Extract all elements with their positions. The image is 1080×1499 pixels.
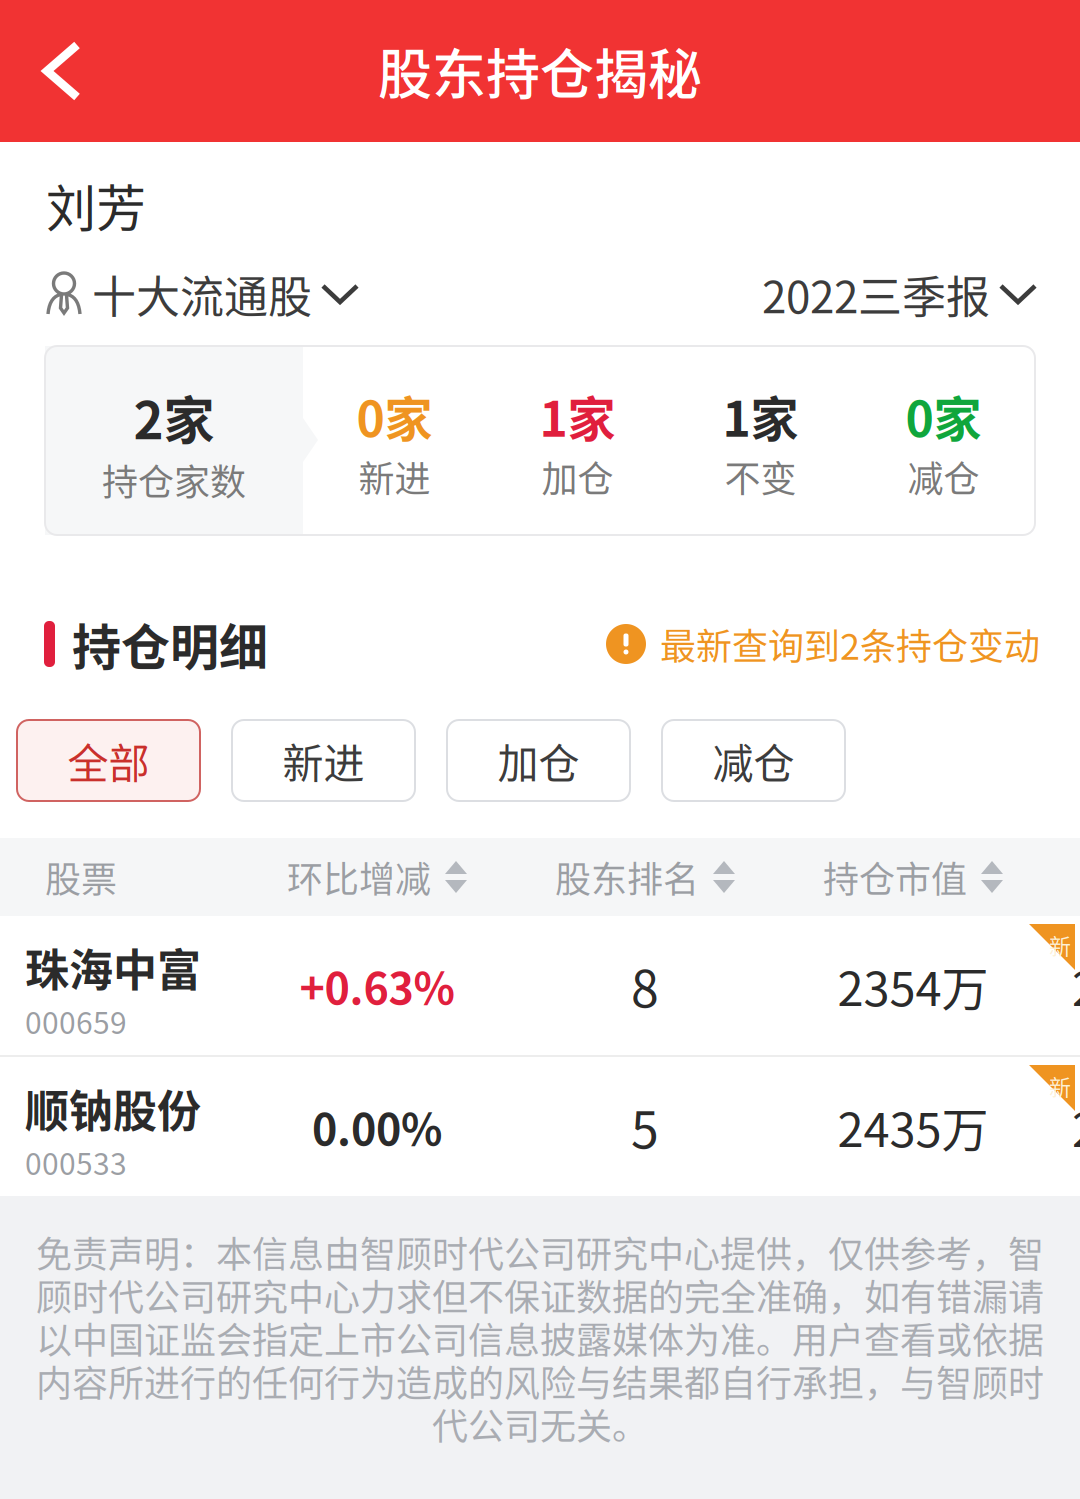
staticText: 000659	[25, 999, 127, 1042]
staticText: 加仓	[497, 731, 579, 790]
button[interactable]: 新进	[232, 720, 415, 801]
staticText: 代公司无关。	[432, 1398, 648, 1441]
button[interactable]: 1家	[486, 346, 669, 535]
button[interactable]: 1家	[669, 346, 852, 535]
staticText: 0.00%	[312, 1095, 442, 1158]
button[interactable]: 十大流通股	[46, 262, 360, 326]
staticText: 珠海中富	[25, 935, 201, 999]
button[interactable]: 顺钠股份	[0, 1057, 1080, 1196]
staticText: 2354万	[837, 951, 988, 1020]
button[interactable]: 环比增减	[243, 851, 511, 903]
staticText: 以中国证监会指定上市公司信息披露媒体为准。用户查看或依据	[36, 1312, 1044, 1355]
staticText: 减仓	[712, 731, 794, 790]
staticText: 5	[631, 1090, 659, 1163]
staticText: 000533	[25, 1140, 127, 1183]
staticText: 免责声明：本信息由智顾时代公司研究中心提供，仅供参考，智	[36, 1226, 1044, 1269]
staticText: 内容所进行的任何行为造成的风险与结果都自行承担，与智顾时	[36, 1355, 1044, 1398]
staticText: 加仓	[541, 450, 613, 503]
button[interactable]: 0家	[852, 346, 1035, 535]
staticText: 0家	[356, 381, 432, 450]
staticText: 0家	[905, 381, 981, 450]
staticText: 持仓明细	[72, 608, 268, 679]
staticText: 顺钠股份	[25, 1076, 201, 1140]
staticText: 刘芳	[46, 169, 146, 241]
staticText: 股票	[45, 851, 117, 903]
button[interactable]: 0家	[303, 346, 486, 535]
button[interactable]: 全部	[17, 720, 200, 801]
button[interactable]: 珠海中富	[0, 916, 1080, 1055]
staticText: 2435万	[837, 1092, 988, 1161]
staticText: 持仓市值	[823, 851, 967, 903]
staticText: 全部	[67, 731, 149, 790]
staticText: 新进	[282, 731, 364, 790]
staticText: +0.63%	[299, 954, 454, 1017]
staticText: 2022三季报	[762, 262, 990, 326]
button[interactable]: 加仓	[447, 720, 630, 801]
staticText: 新进	[358, 450, 430, 503]
staticText: 1家	[722, 381, 798, 450]
staticText: 顾时代公司研究中心力求但不保证数据的完全准确，如有错漏请	[36, 1269, 1044, 1312]
staticText: 1家	[539, 381, 615, 450]
staticText: 新	[1049, 929, 1071, 961]
button[interactable]: 减仓	[662, 720, 845, 801]
staticText: 股东排名	[555, 851, 699, 903]
staticText: 股东持仓揭秘	[378, 32, 702, 110]
staticText: 新	[1049, 1070, 1071, 1102]
staticText: 持仓家数	[102, 454, 246, 506]
button[interactable]: 持仓市值	[779, 851, 1047, 903]
staticText: 2	[1072, 1092, 1080, 1161]
staticText: 减仓	[907, 450, 979, 503]
staticText: 2	[1072, 951, 1080, 1020]
staticText: 环比增减	[287, 851, 431, 903]
button[interactable]: 返回	[0, 9, 124, 133]
staticText: 不变	[724, 450, 796, 503]
staticText: 最新查询到2条持仓变动	[660, 618, 1040, 670]
staticText: 2家	[133, 380, 214, 454]
staticText: 8	[631, 949, 659, 1022]
staticText: 十大流通股	[92, 262, 312, 326]
button[interactable]: 2022三季报	[762, 262, 1038, 326]
button[interactable]: 股东排名	[511, 851, 779, 903]
